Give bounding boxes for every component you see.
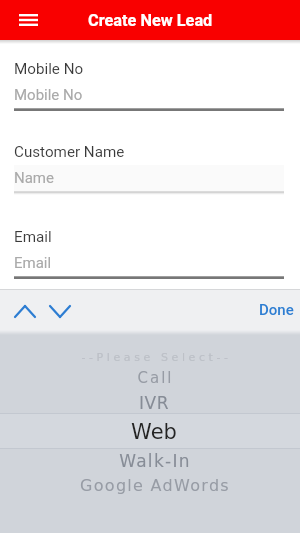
button[interactable]: Walk-In: [0, 445, 300, 475]
button[interactable]: Call: [0, 361, 300, 391]
staticText: Done: [259, 301, 294, 319]
staticText: Name: [14, 169, 54, 187]
button[interactable]: Next field: [43, 294, 77, 328]
staticText: Walk-In: [119, 451, 191, 471]
staticText: Google AdWords: [80, 476, 230, 495]
staticText: IVR: [139, 393, 169, 413]
button[interactable]: Done: [246, 293, 300, 327]
staticText: Mobile No: [14, 86, 83, 104]
button[interactable]: Web: [0, 416, 300, 446]
staticText: Mobile No: [14, 60, 84, 78]
button[interactable]: Google AdWords: [0, 469, 300, 499]
staticText: Web: [131, 420, 177, 444]
button[interactable]: Email: [14, 250, 284, 280]
staticText: Call: [137, 369, 174, 386]
staticText: Customer Name: [14, 143, 125, 161]
button[interactable]: --Please Select--: [0, 342, 300, 372]
staticText: --Please Select--: [81, 351, 232, 364]
button[interactable]: Menu: [10, 2, 46, 38]
staticText: Email: [14, 254, 52, 272]
button[interactable]: Name: [14, 165, 284, 195]
staticText: Email: [14, 228, 52, 246]
button[interactable]: IVR: [0, 387, 300, 417]
button[interactable]: Mobile No: [14, 82, 284, 112]
button[interactable]: Previous field: [8, 294, 42, 328]
staticText: Create New Lead: [88, 11, 213, 30]
